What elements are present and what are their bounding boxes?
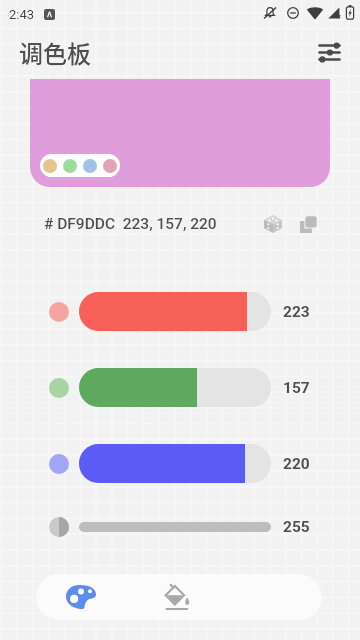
button[interactable]: Copy — [291, 208, 325, 240]
button[interactable]: 157 — [0, 368, 360, 407]
staticText: 255 — [283, 518, 310, 536]
button[interactable]: 223 — [0, 292, 360, 331]
button[interactable]: 220 — [0, 444, 360, 483]
button[interactable]: Fill color — [152, 574, 200, 620]
staticText: 220 — [283, 455, 310, 473]
button[interactable] — [30, 79, 330, 187]
button[interactable]: Palette — [57, 574, 105, 620]
staticText: 157 — [283, 379, 310, 397]
staticText: 2:43 — [9, 7, 35, 22]
button[interactable]: Tune — [311, 34, 347, 70]
button[interactable]: 255 — [0, 517, 360, 537]
staticText: # DF9DDC 223, 157, 220 — [44, 215, 217, 233]
staticText: 调色板 — [19, 35, 91, 70]
staticText: 223 — [283, 303, 310, 321]
button[interactable]: Random color — [256, 208, 290, 240]
